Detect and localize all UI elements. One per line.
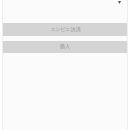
staticText: 購入 <box>60 43 70 49</box>
button[interactable]: 購入 <box>3 41 127 53</box>
staticText: コンビニ決済 <box>50 26 81 32</box>
button[interactable]: Expand <box>115 0 124 5</box>
button[interactable]: コンビニ決済 <box>3 23 127 36</box>
